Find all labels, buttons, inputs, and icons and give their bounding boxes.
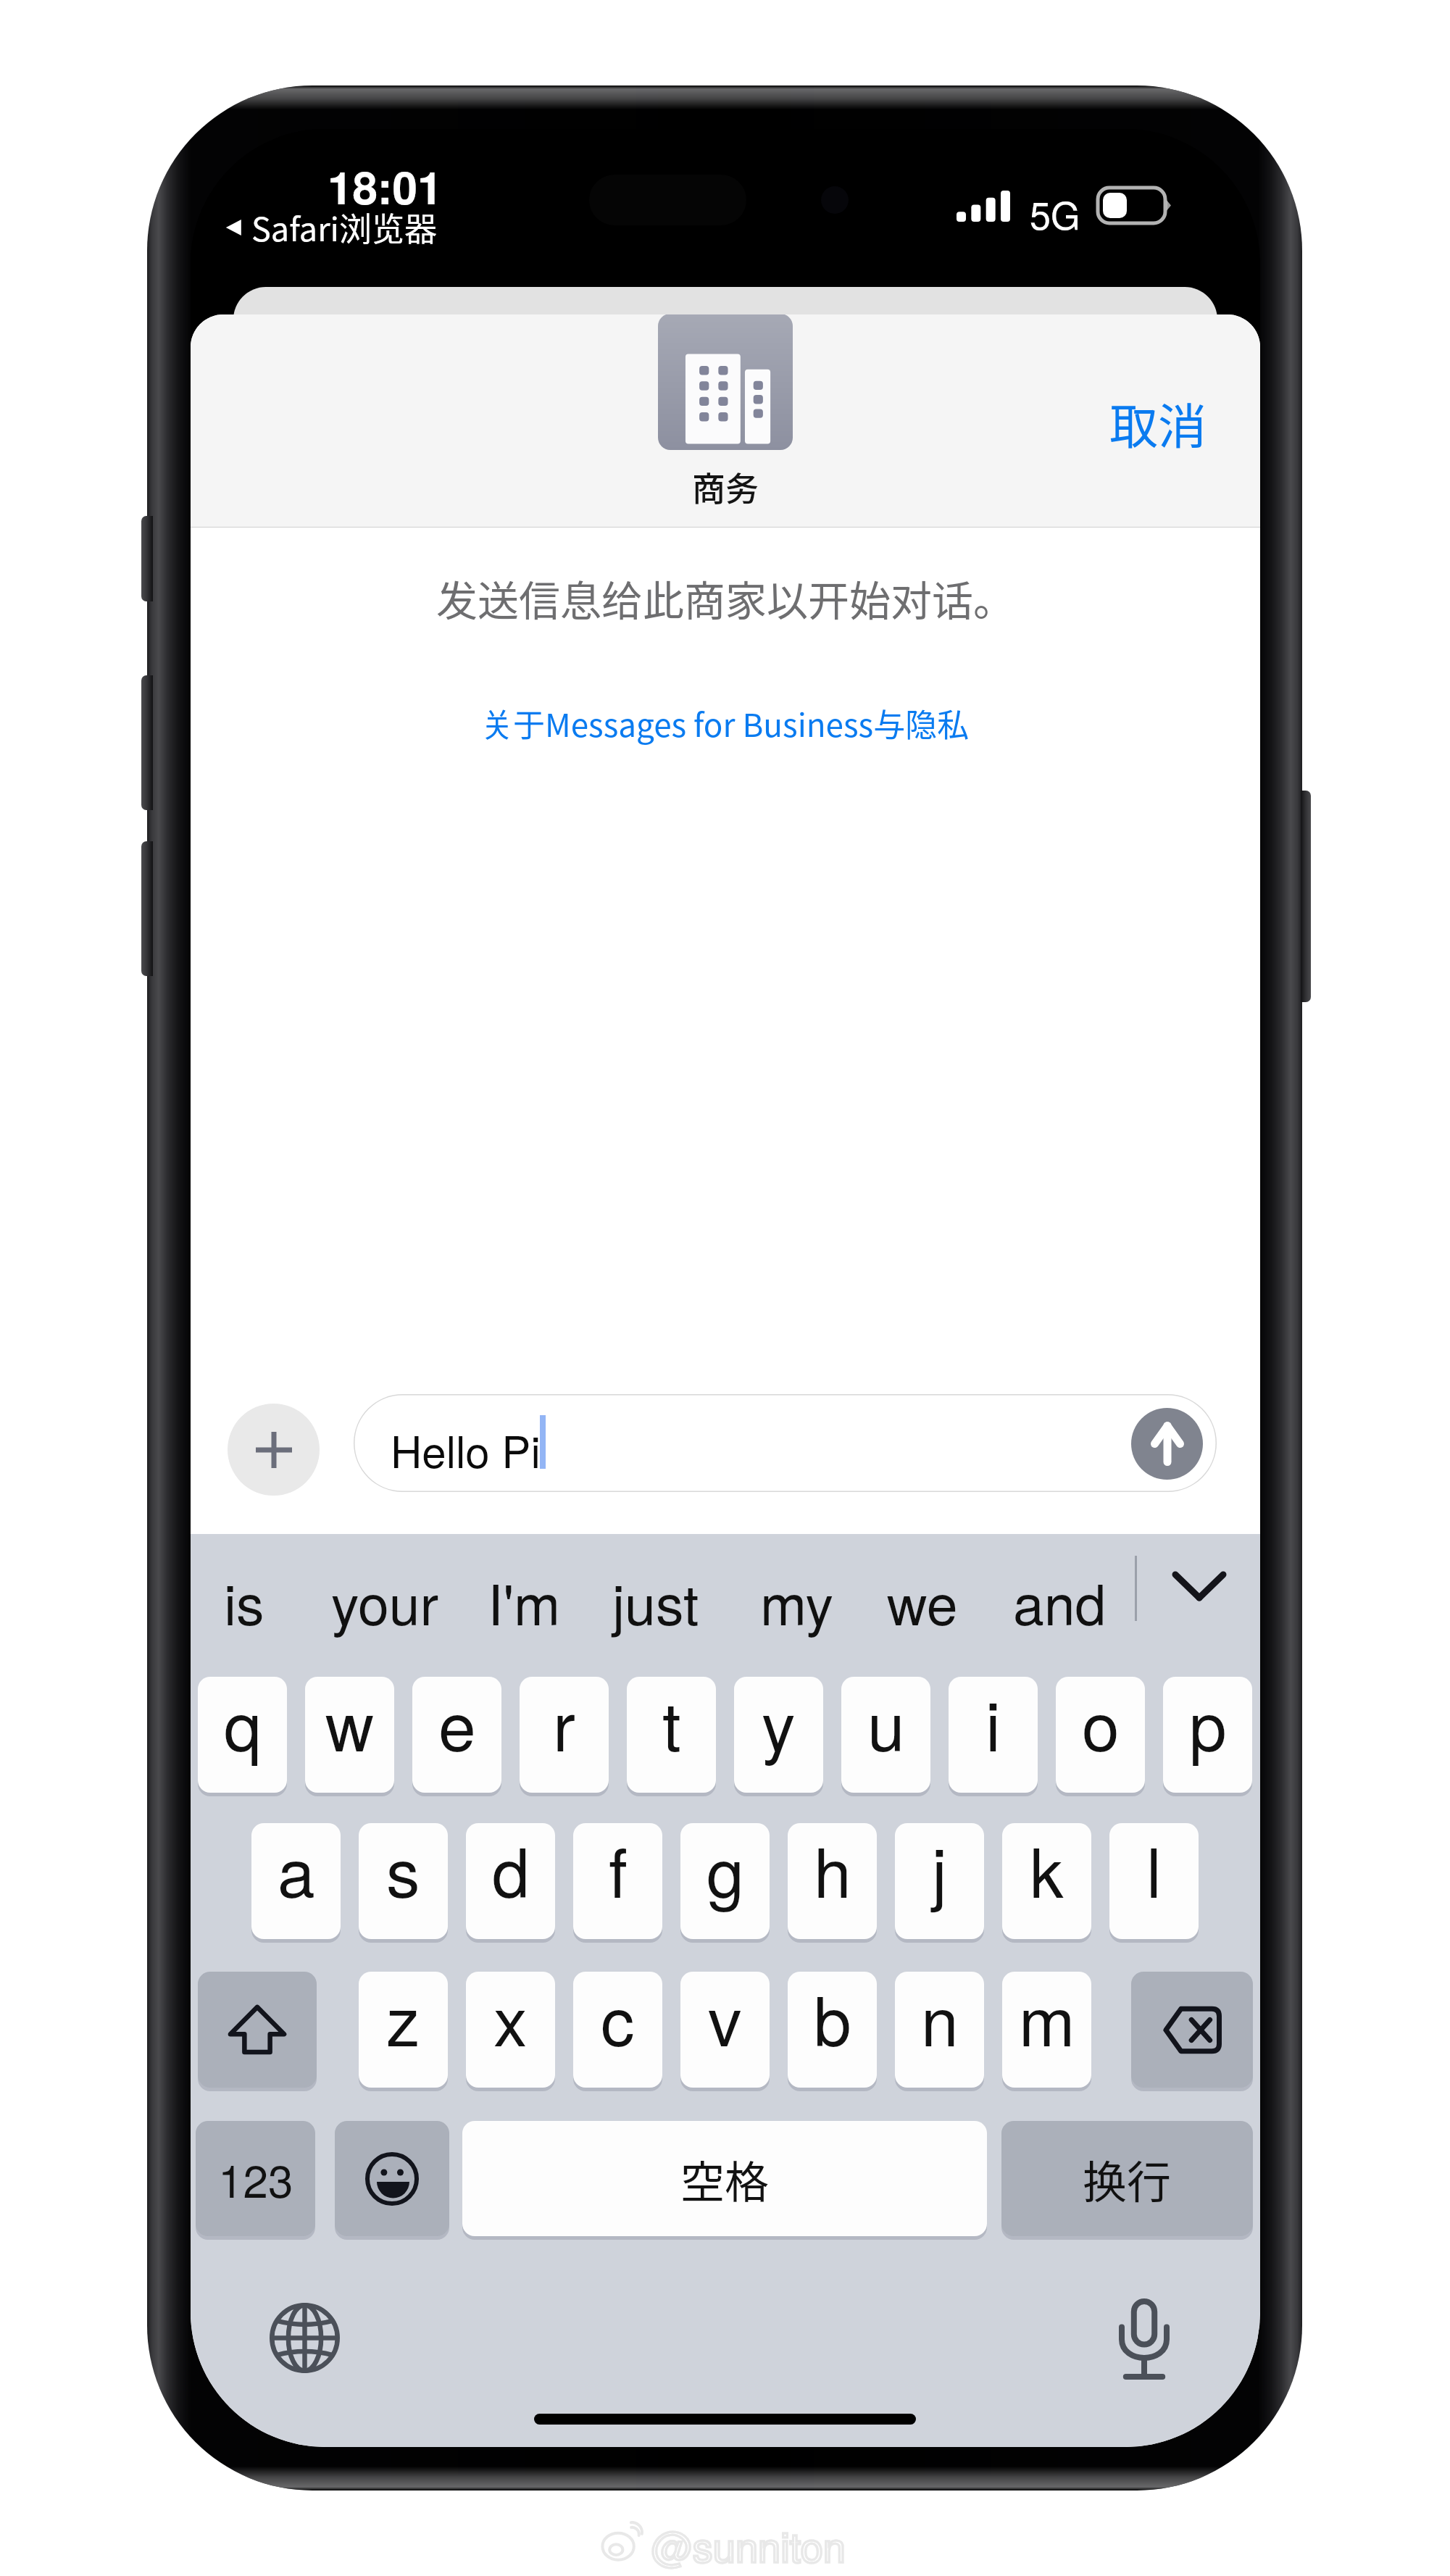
button[interactable]: Shift — [198, 1972, 317, 2088]
staticText: l — [1146, 1823, 1162, 1917]
button[interactable]: h — [788, 1823, 877, 1939]
button[interactable]: Hello Pi — [354, 1394, 1217, 1492]
staticText: we — [887, 1562, 958, 1641]
staticText: v — [708, 1972, 742, 2065]
staticText: and — [1013, 1562, 1107, 1641]
staticText: 123 — [218, 2146, 293, 2211]
button[interactable]: Dictate — [1101, 2280, 1188, 2398]
button[interactable]: 123 — [196, 2121, 315, 2236]
button[interactable]: w — [305, 1677, 394, 1793]
button[interactable]: f — [573, 1823, 662, 1939]
button[interactable]: 换行 — [1001, 2121, 1253, 2236]
staticText: r — [553, 1677, 575, 1770]
staticText: b — [814, 1972, 851, 2065]
staticText: 换行 — [1083, 2147, 1172, 2211]
button[interactable]: g — [680, 1823, 770, 1939]
button[interactable]: b — [788, 1972, 877, 2088]
staticText: t — [662, 1677, 681, 1770]
staticText: u — [867, 1677, 905, 1770]
staticText: w — [325, 1677, 375, 1770]
staticText: e — [438, 1677, 476, 1770]
staticText: x — [493, 1972, 528, 2065]
button[interactable]: c — [573, 1972, 662, 2088]
button[interactable]: Emoji — [335, 2121, 449, 2236]
staticText: 取消 — [1109, 388, 1207, 458]
button[interactable]: o — [1056, 1677, 1145, 1793]
button[interactable]: s — [359, 1823, 448, 1939]
staticText: k — [1030, 1823, 1064, 1917]
button[interactable]: is — [202, 1540, 286, 1663]
staticText: 商务 — [692, 462, 759, 511]
staticText: a — [278, 1823, 315, 1917]
staticText: 关于Messages for Business与隐私 — [481, 700, 970, 746]
staticText: 发送信息给此商家以开始对话。 — [436, 568, 1014, 628]
staticText: f — [609, 1823, 628, 1917]
button[interactable]: we — [865, 1540, 980, 1663]
staticText: just — [612, 1562, 699, 1641]
staticText: y — [762, 1677, 796, 1770]
staticText: 空格 — [680, 2147, 770, 2211]
button[interactable]: n — [895, 1972, 984, 2088]
button[interactable]: k — [1002, 1823, 1091, 1939]
staticText: my — [760, 1562, 834, 1641]
button[interactable]: Hide keyboard — [1162, 1548, 1237, 1624]
button[interactable]: 关于Messages for Business与隐私 — [467, 691, 984, 755]
button[interactable]: y — [734, 1677, 823, 1793]
staticText: i — [986, 1677, 1001, 1770]
button[interactable]: I'm — [466, 1540, 583, 1663]
staticText: 5G — [1030, 186, 1080, 240]
button[interactable]: r — [520, 1677, 609, 1793]
staticText: Safari浏览器 — [251, 204, 437, 251]
staticText: s — [386, 1823, 420, 1917]
button[interactable]: my — [738, 1540, 856, 1663]
button[interactable]: q — [198, 1677, 287, 1793]
button[interactable]: Send — [1131, 1408, 1203, 1480]
staticText: j — [932, 1823, 947, 1917]
staticText: m — [1019, 1972, 1075, 2065]
button[interactable]: l — [1109, 1823, 1199, 1939]
staticText: p — [1189, 1677, 1227, 1770]
button[interactable]: j — [895, 1823, 984, 1939]
staticText: q — [224, 1677, 262, 1770]
button[interactable]: t — [627, 1677, 716, 1793]
staticText: z — [386, 1972, 420, 2065]
button[interactable]: 取消 — [1095, 373, 1221, 472]
button[interactable]: m — [1002, 1972, 1091, 2088]
button[interactable]: a — [251, 1823, 341, 1939]
button[interactable]: x — [466, 1972, 555, 2088]
button[interactable]: Add attachment — [228, 1404, 320, 1496]
staticText: I'm — [488, 1562, 561, 1641]
staticText: d — [492, 1823, 530, 1917]
button[interactable]: Backspace — [1131, 1972, 1253, 2088]
button[interactable]: Change keyboard — [268, 2301, 341, 2374]
button[interactable]: Business — [658, 314, 793, 450]
staticText: 18:01 — [328, 154, 443, 218]
button[interactable]: i — [949, 1677, 1038, 1793]
staticText: o — [1082, 1677, 1120, 1770]
button[interactable]: z — [359, 1972, 448, 2088]
button[interactable]: 空格 — [462, 2121, 987, 2236]
staticText: n — [921, 1972, 959, 2065]
button[interactable]: your — [309, 1540, 461, 1663]
button[interactable]: p — [1163, 1677, 1252, 1793]
staticText: h — [814, 1823, 851, 1917]
staticText: is — [224, 1562, 264, 1641]
staticText: c — [601, 1972, 635, 2065]
button[interactable]: d — [466, 1823, 555, 1939]
button[interactable]: u — [841, 1677, 930, 1793]
button[interactable]: v — [680, 1972, 770, 2088]
button[interactable]: just — [591, 1540, 721, 1663]
button[interactable]: and — [991, 1540, 1128, 1663]
staticText: your — [331, 1562, 439, 1641]
staticText: @sunniton — [651, 2516, 846, 2574]
staticText: Hello Pi — [391, 1418, 541, 1480]
button[interactable]: e — [412, 1677, 501, 1793]
staticText: g — [707, 1823, 744, 1917]
